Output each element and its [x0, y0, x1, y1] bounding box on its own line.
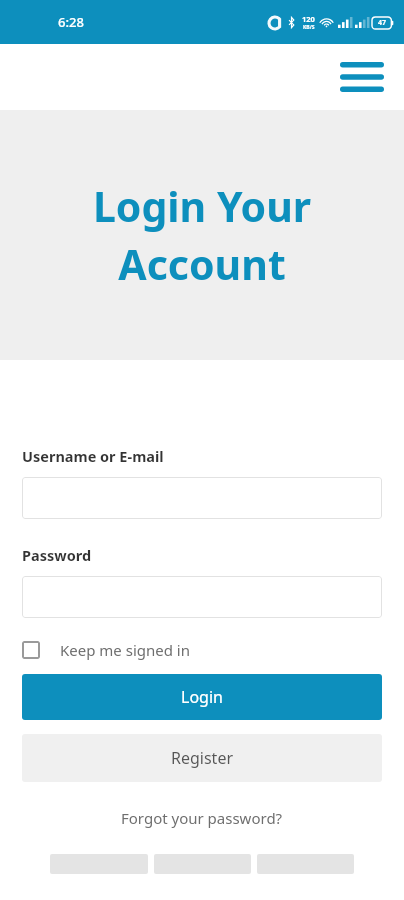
- button[interactable]: Forgot your password?: [22, 808, 382, 828]
- button[interactable]: Register: [22, 734, 382, 782]
- button[interactable]: Keep me signed in: [22, 640, 382, 660]
- button[interactable]: Login: [22, 674, 382, 720]
- staticText: 120: [302, 14, 315, 24]
- staticText: Register: [171, 747, 234, 769]
- staticText: Forgot your password?: [121, 808, 283, 828]
- staticText: Login Your Account: [36, 178, 368, 292]
- button[interactable]: Open navigation menu: [340, 55, 384, 99]
- button[interactable]: [22, 477, 382, 519]
- staticText: Password: [22, 545, 92, 565]
- staticText: Login: [181, 686, 223, 708]
- button[interactable]: [22, 576, 382, 618]
- staticText: 6:28: [58, 13, 84, 31]
- staticText: KB/S: [303, 24, 315, 31]
- staticText: Username or E-mail: [22, 446, 164, 466]
- staticText: 47: [378, 18, 387, 28]
- staticText: Keep me signed in: [60, 640, 190, 660]
